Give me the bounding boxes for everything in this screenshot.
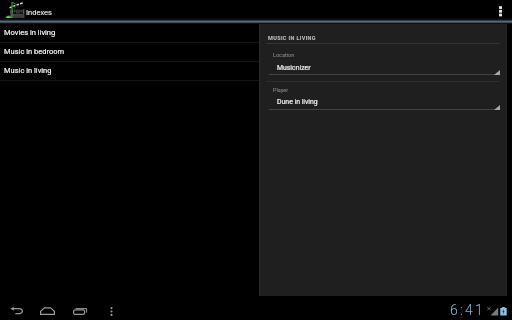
button[interactable]: Location	[260, 52, 507, 78]
staticText: 6:41	[450, 302, 486, 318]
button[interactable]: Player	[260, 87, 507, 113]
button[interactable]: Movies in living	[0, 24, 259, 43]
staticText: Location	[273, 52, 295, 58]
button[interactable]: Menu	[97, 296, 125, 320]
button[interactable]: Music in living	[0, 62, 259, 81]
staticText: Movies in living	[4, 28, 56, 37]
button[interactable]: Home	[33, 296, 61, 320]
staticText: Indexes	[26, 8, 52, 17]
button[interactable]: More options	[488, 0, 512, 24]
staticText: MUSIC IN LIVING	[268, 35, 316, 41]
staticText: Player	[273, 87, 289, 93]
button[interactable]: Back	[3, 296, 31, 320]
staticText: Musicnizer	[277, 64, 311, 72]
staticText: Music in living	[4, 66, 52, 75]
button[interactable]: Music in bedroom	[0, 43, 259, 62]
button[interactable]: Recent apps	[66, 296, 94, 320]
staticText: Dune in living	[277, 98, 318, 106]
staticText: Music in bedroom	[4, 47, 65, 56]
